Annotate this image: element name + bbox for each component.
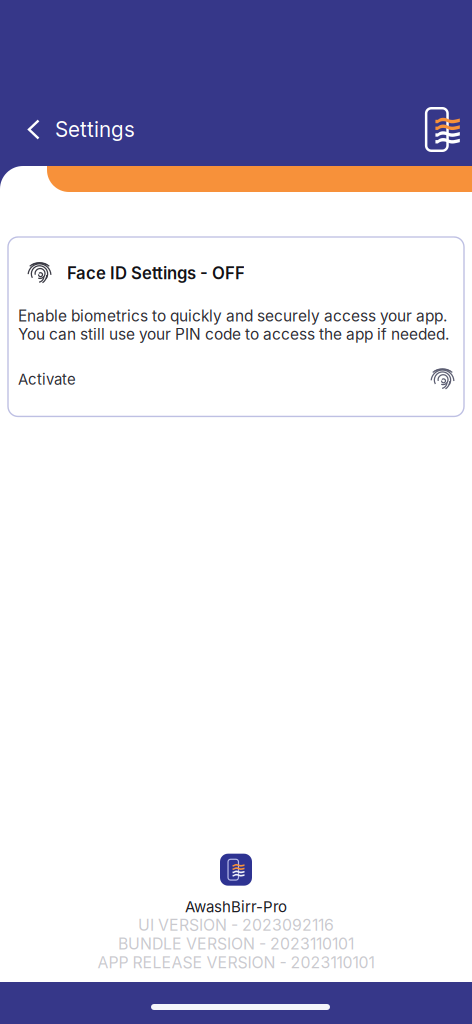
staticText: APP RELEASE VERSION - 2023110101 [97, 953, 374, 972]
staticText: Settings [55, 117, 135, 142]
staticText: AwashBirr-Pro [185, 898, 287, 916]
staticText: Enable biometrics to quickly and securel… [18, 306, 447, 325]
staticText: UI VERSION - 2023092116 [138, 915, 334, 935]
staticText: Activate [18, 370, 76, 388]
button[interactable]: Back to Settings [0, 108, 145, 151]
button[interactable]: Activate [18, 365, 76, 393]
staticText: BUNDLE VERSION - 2023110101 [118, 934, 354, 953]
staticText: Face ID Settings - OFF [67, 263, 245, 283]
staticText: You can still use your PIN code to acces… [18, 325, 449, 343]
button[interactable]: Activate Face ID [431, 366, 454, 393]
button[interactable]: AwashBirr [415, 103, 472, 156]
